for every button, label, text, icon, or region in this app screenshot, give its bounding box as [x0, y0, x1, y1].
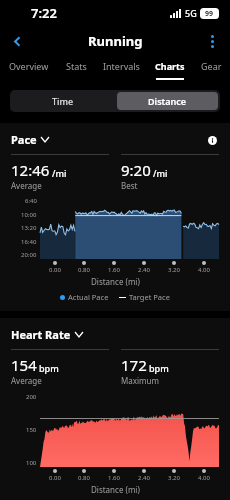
staticText: 6:40: [25, 197, 37, 205]
staticText: Running: [88, 32, 143, 50]
button[interactable]: Time: [10, 90, 115, 112]
staticText: Stats: [66, 60, 87, 72]
staticText: 3.20: [168, 474, 180, 482]
staticText: 0.80: [78, 474, 90, 482]
staticText: 13:20: [21, 224, 37, 232]
staticText: 1.60: [108, 474, 120, 482]
staticText: Overview: [9, 60, 49, 72]
button[interactable]: Intervals: [96, 56, 147, 83]
staticText: 20:00: [21, 251, 37, 259]
staticText: Charts: [155, 60, 185, 72]
staticText: 3.20: [168, 266, 180, 274]
staticText: 0.80: [78, 266, 90, 274]
staticText: 172: [121, 355, 147, 375]
staticText: bpm: [39, 362, 59, 374]
staticText: bpm: [149, 362, 169, 374]
staticText: 4.00: [198, 474, 210, 482]
staticText: 4.00: [198, 266, 210, 274]
staticText: Distance (mi): [91, 484, 140, 495]
staticText: Distance (mi): [91, 276, 140, 287]
staticText: Best: [121, 180, 138, 191]
button[interactable]: Information: [205, 133, 219, 147]
staticText: 12:46: [11, 160, 50, 180]
staticText: /mi: [153, 167, 168, 179]
staticText: 100: [26, 459, 37, 467]
staticText: 0.00: [49, 266, 61, 274]
button[interactable]: Charts: [147, 56, 192, 83]
staticText: Target Pace: [129, 292, 170, 302]
staticText: 200: [26, 393, 37, 401]
button[interactable]: Overview: [0, 56, 57, 83]
button[interactable]: Distance: [117, 92, 218, 110]
button[interactable]: More options: [199, 28, 225, 54]
button[interactable]: Back: [4, 28, 30, 54]
staticText: 1.60: [108, 266, 120, 274]
staticText: 5G: [185, 7, 197, 19]
staticText: /mi: [52, 167, 67, 179]
staticText: Distance: [148, 95, 187, 107]
staticText: 7:22: [31, 4, 57, 22]
staticText: 16:40: [21, 238, 37, 246]
staticText: Intervals: [103, 60, 140, 72]
button[interactable]: Pace: [11, 132, 49, 147]
staticText: Gear: [201, 60, 222, 72]
button[interactable]: Gear: [192, 56, 230, 83]
staticText: Pace: [11, 132, 37, 147]
staticText: Actual Pace: [68, 292, 109, 302]
staticText: Average: [11, 180, 42, 191]
staticText: Average: [11, 375, 42, 386]
staticText: 99: [205, 9, 214, 19]
button[interactable]: Stats: [57, 56, 96, 83]
staticText: Heart Rate: [11, 327, 71, 342]
staticText: 154: [11, 355, 37, 375]
staticText: 0.00: [49, 474, 61, 482]
staticText: 10:00: [21, 211, 37, 219]
staticText: 2.40: [138, 266, 150, 274]
button[interactable]: Heart Rate: [11, 327, 83, 342]
staticText: 2.40: [138, 474, 150, 482]
staticText: Maximum: [121, 375, 159, 386]
staticText: 9:20: [121, 160, 151, 180]
staticText: 150: [26, 426, 37, 434]
staticText: Time: [52, 95, 74, 107]
